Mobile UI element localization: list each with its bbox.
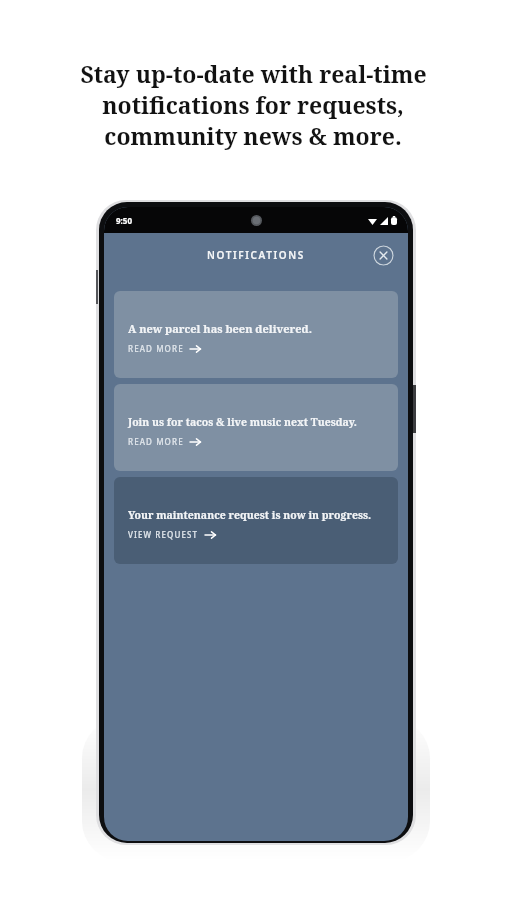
staticText: Stay up-to-date with real-time (80, 58, 427, 89)
staticText: VIEW REQUEST (128, 529, 199, 540)
button[interactable]: Your maintenance request is now in progr… (114, 477, 398, 564)
staticText: READ MORE (128, 343, 184, 354)
staticText: 9:50 (116, 215, 132, 226)
button[interactable]: Close (373, 245, 394, 266)
staticText: Your maintenance request is now in progr… (128, 508, 372, 522)
staticText: community news & more. (104, 120, 402, 151)
staticText: NOTIFICATIONS (207, 248, 305, 262)
staticText: A new parcel has been delivered. (128, 321, 312, 336)
button[interactable]: Join us for tacos & live music next Tues… (114, 384, 398, 471)
staticText: READ MORE (128, 436, 184, 447)
staticText: notifications for requests, (102, 89, 404, 120)
button[interactable]: A new parcel has been delivered. (114, 291, 398, 378)
staticText: Join us for tacos & live music next Tues… (128, 415, 357, 429)
